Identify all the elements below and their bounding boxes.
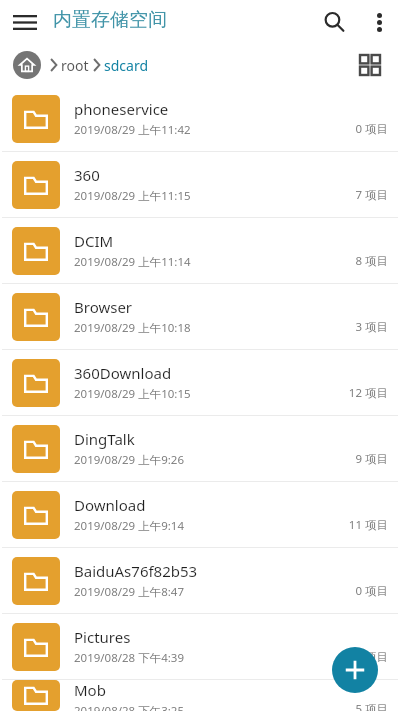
staticText: 5 项目 <box>355 701 388 711</box>
staticText: 2019/08/29 上午11:15 <box>74 188 191 204</box>
button[interactable]: Menu <box>5 0 45 44</box>
staticText: 2019/08/29 上午11:42 <box>74 122 191 138</box>
staticText: Pictures <box>74 627 131 647</box>
button[interactable]: Add <box>332 647 378 693</box>
button[interactable]: 360Download <box>0 350 400 415</box>
staticText: Mob <box>74 680 106 700</box>
staticText: 360Download <box>74 363 172 383</box>
staticText: 2019/08/29 上午10:15 <box>74 386 191 402</box>
staticText: 0 项目 <box>355 121 388 137</box>
button[interactable]: Search <box>313 0 355 44</box>
button[interactable]: Home <box>13 51 41 79</box>
button[interactable]: Grid view <box>352 47 388 83</box>
staticText: Browser <box>74 297 133 317</box>
button[interactable]: DCIM <box>0 218 400 283</box>
staticText: 3 项目 <box>355 319 388 335</box>
button[interactable]: Pictures <box>0 614 400 679</box>
button[interactable]: Mob <box>0 680 400 711</box>
staticText: 2019/08/29 上午9:14 <box>74 518 184 534</box>
staticText: 2019/08/29 上午11:14 <box>74 254 191 270</box>
button[interactable]: Download <box>0 482 400 547</box>
staticText: DCIM <box>74 231 114 251</box>
button[interactable]: phoneservice <box>0 86 400 151</box>
staticText: 2019/08/29 上午8:47 <box>74 584 184 600</box>
staticText: 9 项目 <box>355 451 388 467</box>
staticText: BaiduAs76f82b53 <box>74 561 198 581</box>
staticText: 360 <box>74 165 100 185</box>
staticText: 8 项目 <box>355 253 388 269</box>
button[interactable]: More options <box>359 0 399 44</box>
staticText: 2019/08/28 下午4:39 <box>74 650 184 666</box>
staticText: Download <box>74 495 146 515</box>
button[interactable]: 360 <box>0 152 400 217</box>
staticText: 内置存储空间 <box>53 8 167 32</box>
staticText: 12 项目 <box>348 385 388 401</box>
button[interactable]: Browser <box>0 284 400 349</box>
button[interactable]: DingTalk <box>0 416 400 481</box>
staticText: 2019/08/29 上午9:26 <box>74 452 184 468</box>
button[interactable]: root <box>61 56 89 75</box>
staticText: 11 项目 <box>348 517 388 533</box>
staticText: phoneservice <box>74 99 169 119</box>
button[interactable]: BaiduAs76f82b53 <box>0 548 400 613</box>
staticText: 2019/08/29 上午10:18 <box>74 320 191 336</box>
staticText: 4 项目 <box>355 649 388 665</box>
staticText: 0 项目 <box>355 583 388 599</box>
staticText: 2019/08/28 下午3:25 <box>74 703 184 711</box>
staticText: 7 项目 <box>355 187 388 203</box>
staticText: DingTalk <box>74 429 135 449</box>
button[interactable]: sdcard <box>104 56 149 75</box>
